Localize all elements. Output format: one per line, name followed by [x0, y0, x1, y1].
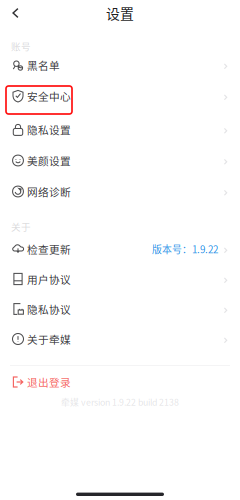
button[interactable]: 用户协议	[0, 264, 240, 294]
staticText: 检查更新	[27, 241, 71, 257]
staticText: 版本号：1.9.22	[152, 242, 218, 256]
staticText: 隐私设置	[27, 122, 71, 137]
staticText: 关于牵媒	[27, 331, 71, 347]
button[interactable]: 隐私协议	[0, 294, 240, 324]
staticText: 安全中心	[27, 88, 71, 104]
staticText: 牵媒 version 1.9.22 build 2138	[61, 396, 179, 408]
staticText: 黑名单	[27, 57, 60, 73]
staticText: 网络诊断	[27, 184, 71, 199]
button[interactable]: 安全中心	[0, 80, 240, 111]
button[interactable]: 检查更新	[0, 234, 240, 264]
button[interactable]: 关于牵媒	[0, 324, 240, 354]
button[interactable]: 隐私设置	[0, 114, 240, 145]
button[interactable]: 退出登录	[0, 367, 240, 397]
button[interactable]: 黑名单	[0, 49, 240, 80]
staticText: 设置	[106, 3, 134, 23]
button[interactable]: 网络诊断	[0, 176, 240, 207]
button[interactable]: Back	[0, 0, 30, 26]
staticText: 美颜设置	[27, 153, 71, 168]
staticText: 用户协议	[27, 271, 71, 287]
staticText: 隐私协议	[27, 301, 71, 317]
staticText: 关于	[11, 219, 31, 233]
staticText: 账号	[11, 39, 31, 53]
button[interactable]: 美颜设置	[0, 145, 240, 176]
staticText: 退出登录	[27, 374, 71, 390]
